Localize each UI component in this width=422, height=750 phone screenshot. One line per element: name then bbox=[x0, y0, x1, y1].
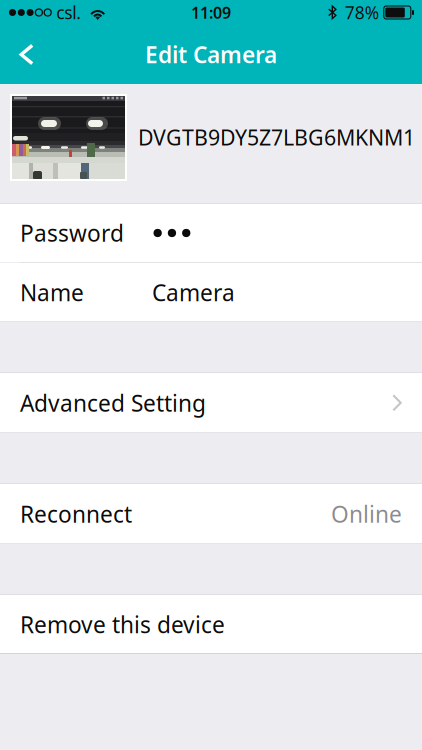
staticText: 78% bbox=[345, 1, 379, 24]
button[interactable]: Name bbox=[0, 263, 422, 322]
staticText: DVGTB9DY5Z7LBG6MKNM1 bbox=[138, 123, 415, 151]
staticText: Name bbox=[20, 277, 84, 307]
button[interactable]: Back bbox=[5, 32, 49, 76]
staticText: Camera bbox=[152, 277, 235, 307]
staticText: Online bbox=[331, 499, 402, 529]
button[interactable]: Advanced Setting bbox=[0, 373, 422, 433]
staticText: 11:09 bbox=[191, 2, 231, 23]
button[interactable]: Password bbox=[0, 204, 422, 262]
staticText: Remove this device bbox=[20, 609, 225, 639]
button[interactable]: Remove this device bbox=[0, 595, 422, 654]
staticText: Advanced Setting bbox=[20, 388, 206, 418]
staticText: csl. bbox=[56, 1, 81, 24]
staticText: Reconnect bbox=[20, 499, 132, 529]
staticText: Edit Camera bbox=[145, 39, 277, 69]
staticText: Password bbox=[20, 218, 124, 248]
button[interactable]: Reconnect bbox=[0, 484, 422, 544]
